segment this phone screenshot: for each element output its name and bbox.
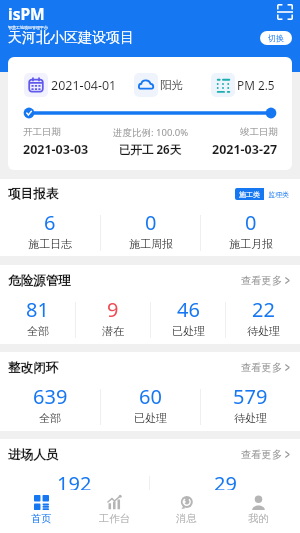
button[interactable]: 我的 xyxy=(222,490,294,533)
button[interactable]: 0 xyxy=(101,209,200,256)
staticText: 进度比例: 100.0% xyxy=(113,126,189,139)
staticText: 天河北小区建设项目 xyxy=(8,29,134,47)
staticText: 81 xyxy=(26,296,49,323)
staticText: 2021-04-01 xyxy=(51,77,117,94)
staticText: 我的 xyxy=(248,512,269,525)
staticText: 进场人员 xyxy=(8,447,59,463)
staticText: 整改闭环 xyxy=(8,360,59,376)
button[interactable]: 192 xyxy=(0,470,149,518)
staticText: 全部 xyxy=(27,324,49,338)
staticText: isPM xyxy=(8,3,45,24)
button[interactable]: 22 xyxy=(226,296,300,344)
staticText: 46 xyxy=(177,296,200,323)
staticText: 消息 xyxy=(176,512,197,525)
button[interactable]: 消息 xyxy=(150,490,222,533)
button[interactable]: 切换 xyxy=(260,31,292,45)
staticText: 待处理 xyxy=(247,324,280,338)
staticText: 6 xyxy=(44,209,56,236)
staticText: 全部 xyxy=(39,411,61,425)
staticText: 工作台 xyxy=(99,512,130,525)
staticText: 待处理 xyxy=(234,411,267,425)
button[interactable]: 81 xyxy=(0,296,75,344)
staticText: 192 xyxy=(57,470,92,497)
staticText: 切换 xyxy=(268,33,284,43)
button[interactable]: 监理类 xyxy=(264,188,293,200)
staticText: 0 xyxy=(245,209,257,236)
button[interactable]: 46 xyxy=(151,296,225,344)
button[interactable]: 60 xyxy=(101,383,200,431)
staticText: 9 xyxy=(107,296,119,323)
staticText: 查看更多 xyxy=(241,274,283,287)
staticText: 施工周报 xyxy=(129,237,173,251)
button[interactable]: 9 xyxy=(76,296,150,344)
staticText: 阳光 xyxy=(160,78,183,92)
staticText: 已处理 xyxy=(172,324,205,338)
button[interactable]: 639 xyxy=(0,383,100,431)
button[interactable]: 6 xyxy=(0,209,100,256)
staticText: 项目报表 xyxy=(8,186,59,202)
staticText: 潜在 xyxy=(102,324,124,338)
button[interactable]: 施工类 xyxy=(235,188,264,200)
button[interactable]: Scan QR code xyxy=(277,4,293,20)
button[interactable]: 首页 xyxy=(5,490,78,533)
staticText: 施工类 xyxy=(239,190,260,199)
staticText: 监理类 xyxy=(268,190,289,199)
button[interactable]: 查看更多 xyxy=(241,274,292,287)
staticText: 60 xyxy=(139,383,162,410)
staticText: 危险源管理 xyxy=(8,273,71,289)
staticText: 竣工日期 xyxy=(240,126,278,138)
staticText: 开工日期 xyxy=(23,126,61,138)
staticText: 施工月报 xyxy=(229,237,273,251)
button[interactable]: 0 xyxy=(201,209,300,256)
staticText: 639 xyxy=(33,383,68,410)
staticText: 29 xyxy=(214,470,237,497)
staticText: 查看更多 xyxy=(241,448,283,461)
staticText: 22 xyxy=(252,296,275,323)
staticText: 2021-03-03 xyxy=(23,141,89,158)
staticText: 智慧工地项目管理平台 xyxy=(8,25,48,30)
staticText: 2021-03-27 xyxy=(212,141,278,158)
button[interactable]: 工作台 xyxy=(78,490,150,533)
button[interactable]: 579 xyxy=(201,383,300,431)
staticText: 579 xyxy=(233,383,268,410)
staticText: 首页 xyxy=(31,512,52,525)
staticText: 0 xyxy=(145,209,157,236)
staticText: PM 2.5 xyxy=(237,77,275,93)
button[interactable]: 查看更多 xyxy=(241,361,292,374)
button[interactable]: 29 xyxy=(150,470,300,518)
staticText: 施工日志 xyxy=(28,237,72,251)
staticText: 已开工 26天 xyxy=(119,142,182,158)
staticText: 查看更多 xyxy=(241,361,283,374)
staticText: 已处理 xyxy=(134,411,167,425)
button[interactable]: 查看更多 xyxy=(241,448,292,461)
